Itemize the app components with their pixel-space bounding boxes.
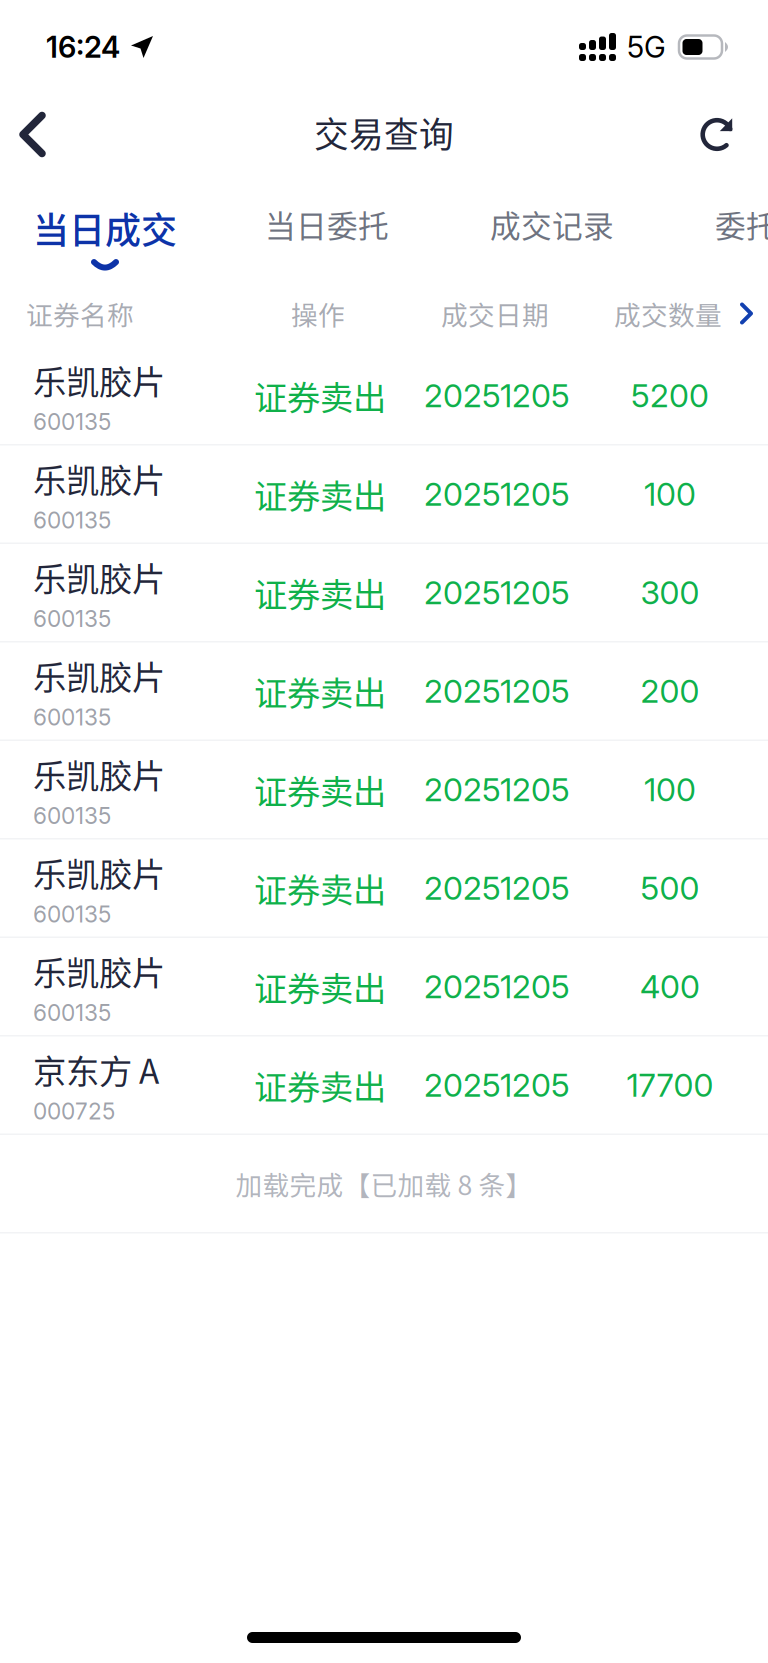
staticText: 20251205 bbox=[424, 770, 570, 809]
staticText: 20251205 bbox=[424, 672, 570, 710]
staticText: 当日委托 bbox=[265, 202, 389, 246]
button[interactable]: 乐凯胶片 bbox=[0, 347, 768, 445]
staticText: 600135 bbox=[33, 999, 111, 1026]
staticText: 证券卖出 bbox=[254, 962, 386, 1011]
staticText: 600135 bbox=[33, 900, 111, 928]
staticText: 300 bbox=[640, 573, 699, 612]
staticText: 成交日期 bbox=[441, 294, 549, 333]
staticText: 证券卖出 bbox=[254, 371, 386, 420]
staticText: 成交记录 bbox=[490, 202, 614, 246]
button[interactable]: 乐凯胶片 bbox=[0, 445, 768, 544]
staticText: 证券卖出 bbox=[254, 470, 386, 518]
staticText: 20251205 bbox=[424, 573, 570, 612]
button[interactable]: 乐凯胶片 bbox=[0, 642, 768, 741]
staticText: 乐凯胶片 bbox=[33, 947, 165, 995]
staticText: 200 bbox=[640, 672, 699, 710]
staticText: 乐凯胶片 bbox=[33, 750, 165, 798]
staticText: 乐凯胶片 bbox=[33, 651, 165, 699]
staticText: 乐凯胶片 bbox=[33, 356, 165, 404]
staticText: 证券卖出 bbox=[254, 1061, 386, 1109]
staticText: 100 bbox=[644, 475, 696, 513]
staticText: 20251205 bbox=[424, 869, 570, 907]
staticText: 乐凯胶片 bbox=[33, 553, 165, 601]
staticText: 乐凯胶片 bbox=[33, 454, 165, 502]
staticText: 17700 bbox=[626, 1066, 713, 1104]
staticText: 16:24 bbox=[46, 29, 120, 65]
staticText: 400 bbox=[640, 967, 700, 1006]
staticText: 600135 bbox=[33, 802, 111, 829]
staticText: 乐凯胶片 bbox=[33, 848, 165, 896]
staticText: 500 bbox=[640, 869, 699, 907]
staticText: 600135 bbox=[33, 605, 111, 632]
button[interactable]: 当日委托 bbox=[237, 185, 417, 280]
button[interactable]: 乐凯胶片 bbox=[0, 938, 768, 1036]
staticText: 5G bbox=[627, 29, 666, 65]
staticText: 20251205 bbox=[424, 475, 570, 513]
button[interactable]: 乐凯胶片 bbox=[0, 741, 768, 839]
staticText: 600135 bbox=[33, 506, 111, 534]
staticText: 600135 bbox=[33, 703, 111, 731]
button[interactable]: 刷新 bbox=[672, 94, 768, 185]
staticText: 成交数量 bbox=[614, 294, 722, 333]
button[interactable]: 京东方 A bbox=[0, 1036, 768, 1135]
staticText: 20251205 bbox=[424, 376, 570, 415]
button[interactable]: 委托记录 bbox=[687, 185, 768, 280]
button[interactable]: 当日成交 bbox=[15, 185, 195, 280]
staticText: 600135 bbox=[33, 408, 111, 435]
button[interactable]: 乐凯胶片 bbox=[0, 544, 768, 642]
staticText: 证券卖出 bbox=[254, 765, 386, 814]
staticText: 委托记录 bbox=[715, 202, 768, 246]
staticText: 证券卖出 bbox=[254, 568, 386, 617]
button[interactable]: 返回 bbox=[0, 94, 96, 185]
staticText: 当日成交 bbox=[33, 202, 177, 254]
staticText: 000725 bbox=[33, 1097, 115, 1125]
staticText: 20251205 bbox=[424, 967, 570, 1006]
staticText: 证券卖出 bbox=[254, 864, 386, 912]
button[interactable]: 乐凯胶片 bbox=[0, 839, 768, 938]
staticText: 操作 bbox=[291, 294, 345, 333]
staticText: 证券卖出 bbox=[254, 667, 386, 715]
button[interactable]: 成交记录 bbox=[462, 185, 642, 280]
staticText: 京东方 A bbox=[33, 1045, 159, 1093]
staticText: 交易查询 bbox=[314, 107, 454, 158]
staticText: 加载完成【已加载 8 条】 bbox=[235, 1164, 532, 1203]
staticText: 20251205 bbox=[424, 1066, 570, 1104]
staticText: 5200 bbox=[631, 376, 709, 415]
staticText: 证券名称 bbox=[26, 294, 134, 333]
staticText: 100 bbox=[644, 770, 696, 809]
